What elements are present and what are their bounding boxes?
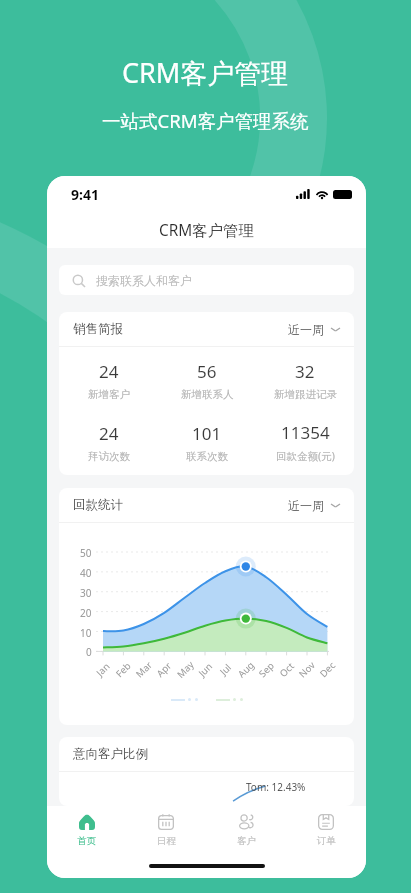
staticText: Tom: 12.43% — [246, 780, 306, 794]
staticText: 搜索联系人和客户 — [96, 273, 192, 288]
staticText: 新增客户 — [88, 388, 130, 401]
staticText: 客户 — [237, 835, 256, 847]
staticText: 新增跟进记录 — [274, 388, 337, 401]
staticText: 意向客户比例 — [73, 746, 148, 762]
staticText: 新增联系人 — [181, 388, 234, 401]
staticText: Apr — [154, 659, 174, 680]
button[interactable]: 近一周 — [288, 322, 340, 337]
button[interactable]: 24 — [59, 347, 158, 413]
staticText: Dec — [317, 659, 338, 680]
button[interactable]: Home — [47, 814, 126, 860]
button[interactable]: 近一周 — [288, 498, 340, 513]
staticText: 近一周 — [288, 322, 324, 337]
button[interactable]: Schedule — [126, 814, 206, 860]
button[interactable]: 11354 — [256, 413, 354, 471]
staticText: Nov — [296, 658, 318, 680]
staticText: 24 — [99, 360, 119, 383]
staticText: 56 — [197, 360, 217, 383]
staticText: 11354 — [281, 421, 330, 444]
staticText: 101 — [192, 422, 222, 445]
staticText: CRM客户管理 — [159, 220, 254, 241]
staticText: 拜访次数 — [88, 450, 130, 463]
staticText: 联系次数 — [186, 450, 228, 463]
staticText: Jan — [93, 660, 113, 679]
staticText: Jul — [217, 661, 234, 678]
staticText: 40 — [80, 566, 92, 580]
staticText: 回款金额(元) — [276, 449, 335, 463]
staticText: Aug — [235, 658, 257, 680]
staticText: 近一周 — [288, 498, 324, 513]
button[interactable]: 101 — [158, 413, 256, 471]
staticText: Feb — [113, 659, 134, 680]
staticText: 50 — [80, 546, 92, 560]
staticText: 0 — [86, 645, 92, 659]
staticText: Oct — [277, 659, 297, 680]
staticText: 销售简报 — [73, 321, 123, 337]
staticText: 20 — [80, 606, 92, 620]
staticText: 30 — [80, 586, 92, 600]
staticText: 首页 — [77, 835, 96, 847]
button[interactable]: Orders — [286, 814, 366, 860]
staticText: 订单 — [317, 835, 336, 847]
staticText: Mar — [133, 658, 155, 680]
button[interactable]: 32 — [256, 347, 354, 413]
staticText: 回款统计 — [73, 497, 123, 513]
button[interactable]: Customers — [206, 814, 286, 860]
staticText: CRM客户管理 — [122, 54, 289, 91]
staticText: Jun — [196, 660, 215, 679]
staticText: Sep — [256, 659, 277, 680]
staticText: 10 — [80, 626, 92, 640]
staticText: 一站式CRM客户管理系统 — [102, 108, 309, 133]
button[interactable]: 24 — [59, 413, 158, 471]
staticText: 9:41 — [71, 185, 99, 204]
staticText: 24 — [99, 422, 119, 445]
staticText: 日程 — [157, 835, 176, 847]
staticText: May — [174, 658, 197, 681]
staticText: 32 — [295, 360, 315, 383]
button[interactable]: 搜索联系人和客户 — [59, 265, 354, 295]
button[interactable]: 56 — [158, 347, 256, 413]
